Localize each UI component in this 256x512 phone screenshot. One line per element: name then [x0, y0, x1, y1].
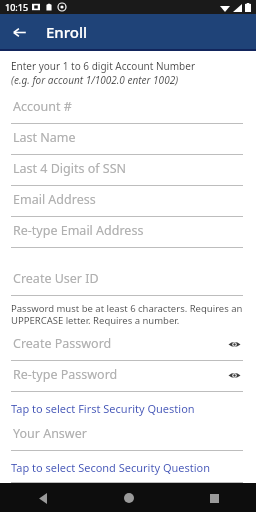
button[interactable]: Back	[30, 485, 56, 511]
button[interactable]: Show password	[226, 367, 242, 383]
staticText: Create User ID	[13, 270, 99, 287]
staticText: Re-type Password	[13, 366, 118, 383]
button[interactable]: Email Address	[11, 186, 243, 217]
button[interactable]: Recent apps	[201, 485, 227, 511]
staticText: Tap to select Second Security Question	[11, 460, 211, 475]
staticText: Account #	[13, 98, 72, 115]
staticText: Enter your 1 to 6 digit Account Number	[11, 59, 196, 73]
button[interactable]: Your Answer	[11, 420, 243, 451]
button[interactable]: Tap to select First Security Question	[11, 400, 243, 417]
staticText: Create Password	[13, 335, 112, 352]
button[interactable]: Show password	[226, 336, 242, 352]
button[interactable]: Re-type Password	[11, 361, 243, 392]
button[interactable]: Create User ID	[11, 265, 243, 296]
button[interactable]: Re-type Email Address	[11, 217, 243, 248]
staticText: 10:15	[5, 1, 29, 13]
staticText: (e.g. for account 1/1002.0 enter 1002)	[11, 73, 179, 87]
button[interactable]: Back	[6, 19, 32, 45]
button[interactable]: Tap to select Second Security Question	[11, 459, 243, 476]
staticText: Last Name	[13, 129, 76, 146]
button[interactable]: Home	[116, 485, 142, 511]
staticText: Enroll	[46, 22, 88, 42]
button[interactable]: Last 4 Digits of SSN	[11, 155, 243, 186]
staticText: Re-type Email Address	[13, 222, 144, 239]
button[interactable]: Your Answer	[11, 479, 243, 483]
staticText: Email Address	[13, 191, 96, 208]
staticText: Your Answer	[13, 425, 87, 442]
button[interactable]: Account #	[11, 93, 243, 124]
button[interactable]: Last Name	[11, 124, 243, 155]
staticText: Tap to select First Security Question	[11, 401, 195, 416]
staticText: Password must be at least 6 characters. …	[11, 302, 243, 326]
staticText: Last 4 Digits of SSN	[13, 160, 127, 177]
button[interactable]: Create Password	[11, 330, 243, 361]
